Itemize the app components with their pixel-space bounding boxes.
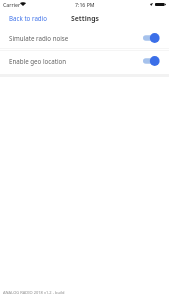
staticText: ANALOG RADIO 2018 v1.2 - build — [3, 290, 65, 295]
staticText: 7:16 PM — [75, 1, 95, 8]
button[interactable]: Back to radio — [4, 12, 48, 24]
staticText: Enable geo location — [9, 57, 67, 65]
button[interactable]: Simulate radio noise — [0, 28, 169, 51]
staticText: Back to radio — [9, 14, 48, 22]
staticText: Carrier — [3, 1, 21, 8]
button[interactable]: Enable geo location — [0, 51, 169, 74]
staticText: Simulate radio noise — [9, 34, 69, 42]
staticText: Settings — [71, 14, 99, 23]
button[interactable]: Toggle setting — [143, 55, 161, 67]
button[interactable]: Toggle setting — [143, 32, 161, 44]
